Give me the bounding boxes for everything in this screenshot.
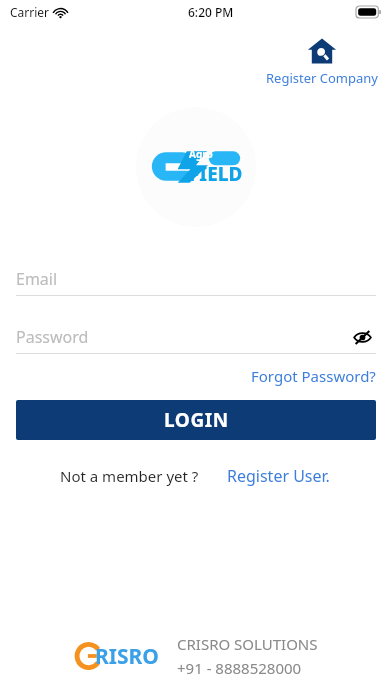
staticText: Email: [16, 268, 58, 290]
staticText: Agro: [189, 147, 213, 161]
staticText: Carrier: [10, 4, 50, 20]
button[interactable]: Register User.: [225, 462, 332, 490]
button[interactable]: LOGIN: [16, 400, 376, 440]
staticText: LOGIN: [164, 407, 229, 433]
staticText: +91 - 8888528000: [177, 658, 302, 678]
button[interactable]: Show password: [348, 323, 376, 351]
staticText: CRISRO SOLUTIONS: [177, 634, 318, 654]
button[interactable]: Password: [16, 321, 376, 353]
button[interactable]: Register Company: [252, 34, 392, 89]
staticText: RISRO: [95, 642, 159, 671]
staticText: Password: [16, 326, 89, 348]
staticText: Forgot Password?: [251, 366, 376, 386]
staticText: 6:20 PM: [188, 4, 234, 20]
staticText: Not a member yet ?: [60, 466, 199, 486]
button[interactable]: Email: [16, 263, 376, 295]
staticText: FIELD: [189, 161, 243, 187]
other: Register Company: [307, 36, 337, 66]
staticText: Register User.: [227, 465, 330, 487]
button[interactable]: Forgot Password?: [235, 364, 392, 388]
staticText: Register Company: [266, 69, 378, 87]
